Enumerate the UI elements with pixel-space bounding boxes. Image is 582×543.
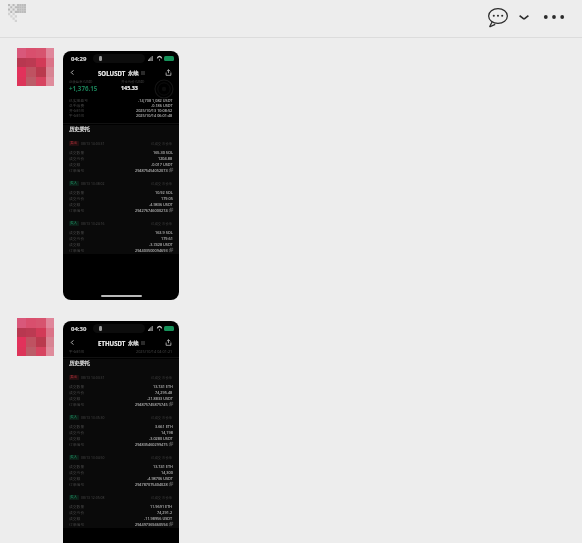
staticText: 已成交 市价单 — [151, 455, 173, 460]
staticText: 14,198 — [161, 430, 173, 435]
staticText: 294875454052073 — [135, 168, 168, 173]
staticText: 294835460299475 — [135, 442, 168, 447]
staticText: 04:30 — [71, 325, 87, 333]
staticText: 订单编号 — [69, 168, 85, 173]
staticText: 永续 — [128, 340, 139, 347]
staticText: 成交额 — [69, 476, 81, 481]
button[interactable]: Back — [67, 337, 78, 348]
button[interactable]: Comments — [485, 4, 511, 30]
staticText: 成交均价 — [69, 236, 85, 241]
button[interactable]: 04:30 — [63, 321, 179, 543]
staticText: 08/13 13:04:50 — [81, 455, 105, 460]
staticText: 买入 — [70, 495, 78, 500]
staticText: 10.92 SOL — [155, 190, 173, 195]
staticText: 179.05 — [161, 196, 173, 201]
staticText: 74,295.48 — [155, 390, 173, 395]
staticText: 卖出 — [70, 375, 78, 380]
staticText: 2025/10/13 10:08:52 — [136, 108, 173, 113]
staticText: -3.7428 USDT — [149, 242, 173, 247]
staticText: 13.741 ETH — [153, 464, 173, 469]
staticText: 已成交 市价单 — [151, 141, 173, 146]
staticText: -0.186 USDT — [151, 103, 173, 108]
staticText: 08/13 13:35:30 — [81, 415, 105, 420]
staticText: 卖出 — [70, 141, 78, 146]
staticText: 已成交 市价单 — [151, 181, 173, 186]
staticText: 294276746000274 — [135, 208, 168, 213]
staticText: 294875745875745 — [135, 402, 168, 407]
staticText: 74,291.2 — [157, 510, 173, 515]
button[interactable]: Expand — [514, 7, 534, 27]
staticText: 历史委托 — [69, 360, 90, 367]
staticText: 163.9 SOL — [155, 230, 173, 235]
button[interactable]: 04:29 — [63, 51, 179, 300]
button[interactable]: Share — [163, 337, 174, 348]
staticText: -4.98706 USDT — [147, 476, 173, 481]
staticText: 13.741 ETH — [153, 384, 173, 389]
staticText: 订单编号 — [69, 402, 85, 407]
staticText: 14,300 — [161, 470, 173, 475]
staticText: 已成交 市价单 — [151, 375, 173, 380]
staticText: 08/13 13:24:16 — [81, 221, 105, 226]
staticText: 2025/10/14 06:01:48 — [136, 113, 173, 118]
staticText: 成交均价 — [69, 470, 85, 475]
staticText: 成交额 — [69, 202, 81, 207]
staticText: ETHUSDT — [98, 339, 126, 347]
button[interactable]: Back — [67, 67, 78, 78]
staticText: 成交额 — [69, 436, 81, 441]
staticText: 订单编号 — [69, 248, 85, 253]
staticText: 成交数量 — [69, 464, 85, 469]
staticText: 平仓时间 — [69, 113, 85, 118]
staticText: 开仓时间 — [69, 108, 85, 113]
staticText: 3.661 ETH — [155, 424, 173, 429]
staticText: 179.61 — [161, 236, 173, 241]
staticText: 成交数量 — [69, 190, 85, 195]
staticText: 总收益率 (USD) — [69, 79, 93, 84]
staticText: 成交均价 — [69, 510, 85, 515]
button[interactable]: Share — [163, 67, 174, 78]
staticText: 总手续费 — [69, 103, 85, 108]
staticText: 成交额 — [69, 516, 81, 521]
button[interactable]: More options — [542, 5, 566, 29]
staticText: 成交均价 — [69, 430, 85, 435]
staticText: 成交额 — [69, 396, 81, 401]
staticText: 平仓时间 — [69, 349, 85, 354]
staticText: 永续 — [128, 70, 139, 77]
staticText: +1,376.15 — [69, 84, 98, 92]
staticText: 成交数量 — [69, 504, 85, 509]
staticText: -11.98956 USDT — [144, 516, 173, 521]
staticText: 订单编号 — [69, 208, 85, 213]
staticText: 成交均价 — [69, 196, 85, 201]
staticText: 开仓均价 (USD) — [121, 79, 145, 84]
staticText: 成交数量 — [69, 424, 85, 429]
staticText: 历史委托 — [69, 126, 90, 133]
staticText: 145.33 — [121, 84, 138, 91]
staticText: 成交均价 — [69, 156, 85, 161]
staticText: 08/13 12:05:08 — [81, 495, 105, 500]
staticText: 已成交 市价单 — [151, 415, 173, 420]
staticText: 成交数量 — [69, 384, 85, 389]
staticText: 成交额 — [69, 162, 81, 167]
staticText: 成交均价 — [69, 390, 85, 395]
staticText: 2025/10/14 04:01:21 — [136, 349, 173, 354]
staticText: 买入 — [70, 181, 78, 186]
staticText: 已成交 市价单 — [151, 495, 173, 500]
staticText: SOLUSDT — [98, 69, 126, 77]
staticText: 订单编号 — [69, 482, 85, 487]
staticText: 08/13 14:03:31 — [81, 375, 105, 380]
staticText: -3.0280 USDT — [149, 436, 173, 441]
staticText: 买入 — [70, 415, 78, 420]
staticText: 订单编号 — [69, 442, 85, 447]
staticText: 买入 — [70, 455, 78, 460]
staticText: 买入 — [70, 221, 78, 226]
staticText: 08/13 13:38:02 — [81, 181, 105, 186]
staticText: 165.30 SOL — [153, 150, 173, 155]
staticText: 订单编号 — [69, 522, 85, 527]
staticText: 04:29 — [71, 55, 87, 63]
staticText: -21.8833 USDT — [147, 396, 173, 401]
staticText: 08/13 14:03:31 — [81, 141, 105, 146]
staticText: 成交额 — [69, 242, 81, 247]
staticText: -0.017 USDT — [151, 162, 173, 167]
staticText: 294497369460594 — [135, 522, 168, 527]
staticText: 已成交 市价单 — [151, 221, 173, 226]
staticText: -4.9836 USDT — [149, 202, 173, 207]
